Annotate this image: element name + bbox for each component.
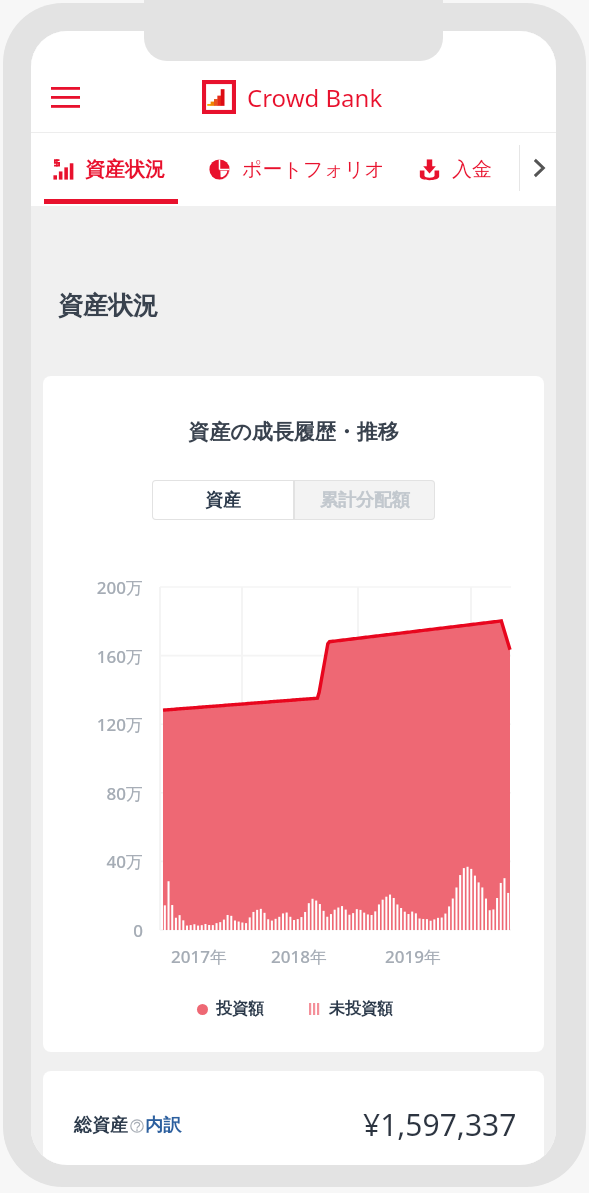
button[interactable]: 入金 [419,157,492,182]
button[interactable]: 未投資額 [309,999,393,1019]
button[interactable]: Menu [37,69,93,125]
staticText: 80万 [43,782,143,805]
staticText: 2017年 [156,945,242,968]
staticText: 総資産 [74,1114,128,1137]
staticText: 未投資額 [329,999,393,1019]
button[interactable]: 投資額 [197,999,264,1019]
staticText: 120万 [43,713,143,736]
button[interactable]: More tabs [517,146,556,190]
staticText: 40万 [43,850,143,873]
button[interactable]: 累計分配額 [295,481,434,519]
staticText: 資産 [205,489,241,512]
button[interactable]: 資産 [153,481,293,519]
staticText: 資産の成長履歴・推移 [43,419,544,445]
staticText: 資産状況 [58,290,158,321]
staticText: Crowd Bank [247,81,383,114]
button[interactable]: 総資産 [74,1114,181,1137]
button[interactable]: 資産状況 [53,157,165,182]
staticText: 160万 [43,645,143,668]
staticText: ポートフォリオ [242,157,385,182]
staticText: 入金 [452,157,492,182]
staticText: 累計分配額 [320,489,410,512]
staticText: 内訳 [145,1114,181,1137]
staticText: 投資額 [216,999,264,1019]
staticText: 200万 [43,576,143,599]
staticText: 資産状況 [85,157,165,182]
staticText: 0 [43,919,143,942]
button[interactable]: ポートフォリオ [209,157,385,182]
staticText: ¥1,597,337 [363,1104,517,1145]
staticText: 2018年 [256,945,342,968]
staticText: 2019年 [370,945,456,968]
